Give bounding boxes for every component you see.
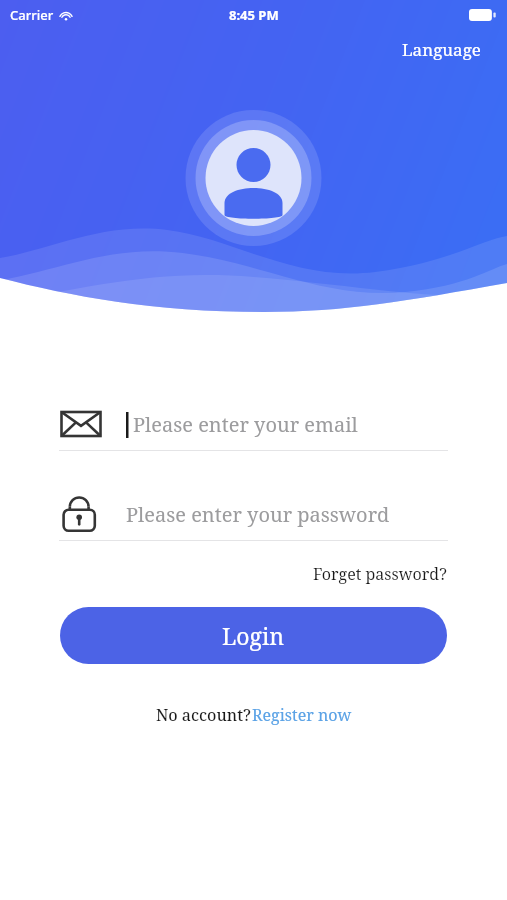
- staticText: Login: [222, 620, 285, 651]
- staticText: No account?: [156, 704, 252, 726]
- staticText: Register now: [252, 704, 352, 726]
- button[interactable]: Forget password?: [307, 557, 453, 591]
- button[interactable]: Language: [396, 34, 487, 65]
- staticText: Forget password?: [313, 563, 447, 585]
- button[interactable]: Register now: [252, 704, 352, 726]
- staticText: Please enter your email: [133, 411, 358, 438]
- button[interactable]: Email: [60, 398, 447, 450]
- staticText: 8:45 PM: [229, 6, 279, 24]
- other: Password: [60, 493, 100, 535]
- staticText: Language: [402, 38, 481, 61]
- staticText: Carrier: [10, 6, 54, 24]
- button[interactable]: Password: [60, 488, 447, 540]
- button[interactable]: Login: [60, 607, 447, 664]
- staticText: Please enter your password: [126, 501, 390, 528]
- other: Email: [60, 408, 102, 440]
